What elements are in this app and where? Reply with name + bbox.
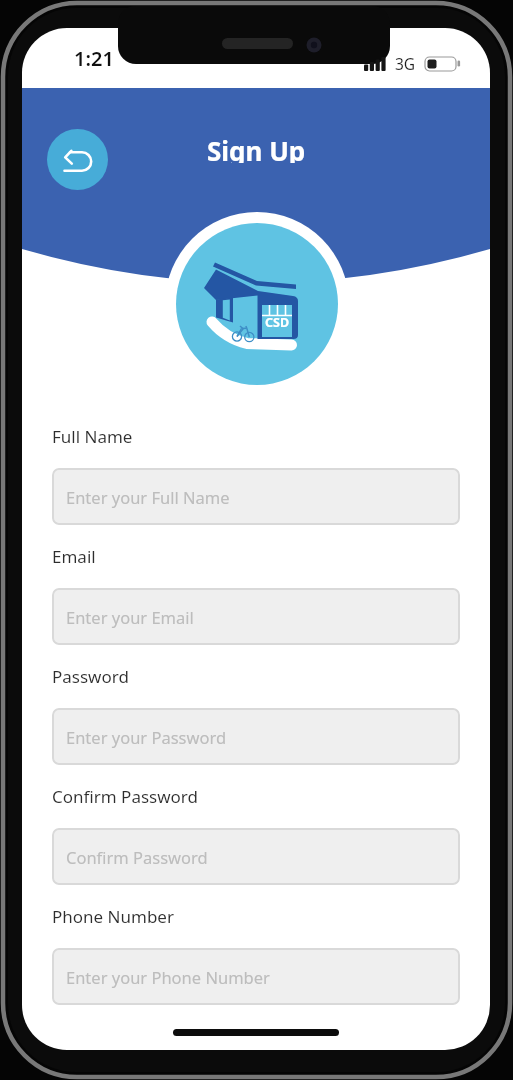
button[interactable]: Enter your Password — [52, 708, 460, 765]
staticText: Full Name — [52, 425, 133, 448]
staticText: Enter your Full Name — [66, 486, 230, 508]
staticText: Password — [52, 665, 129, 688]
staticText: Enter your Email — [66, 606, 194, 628]
staticText: Sign Up — [207, 133, 306, 163]
staticText: Enter your Phone Number — [66, 966, 270, 988]
staticText: Confirm Password — [52, 785, 198, 808]
staticText: Phone Number — [52, 905, 174, 928]
staticText: Email — [52, 545, 96, 568]
button[interactable]: Confirm Password — [52, 828, 460, 885]
button[interactable]: Enter your Full Name — [52, 468, 460, 525]
staticText: Confirm Password — [66, 846, 208, 868]
staticText: Enter your Password — [66, 726, 227, 748]
staticText: 3G — [395, 53, 416, 73]
staticText: 1:21 — [74, 45, 114, 71]
button[interactable] — [47, 129, 108, 190]
button[interactable]: Enter your Email — [52, 588, 460, 645]
button[interactable]: Enter your Phone Number — [52, 948, 460, 1005]
staticText: CSD — [265, 314, 290, 328]
